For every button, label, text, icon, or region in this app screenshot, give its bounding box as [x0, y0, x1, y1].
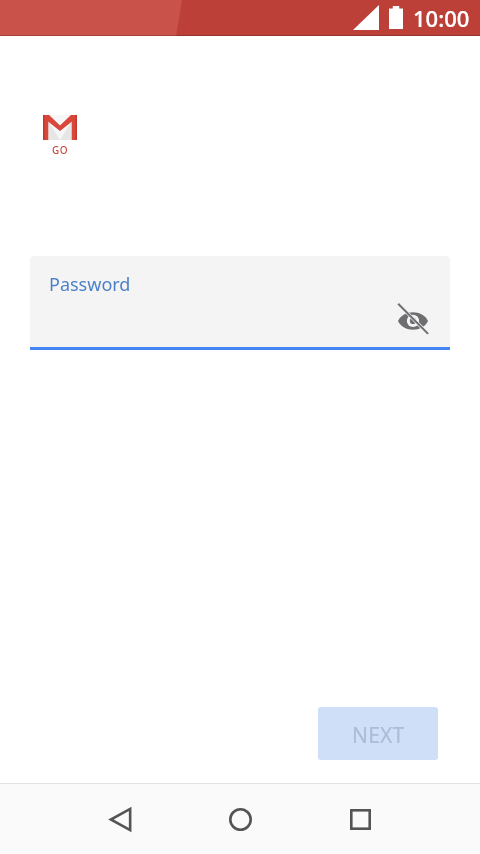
button[interactable]: Home — [216, 795, 264, 843]
button[interactable]: Show password — [389, 295, 437, 343]
staticText: NEXT — [352, 721, 405, 750]
staticText: Password — [49, 272, 131, 297]
staticText: 10:00 — [413, 3, 470, 33]
button[interactable]: Recent apps — [336, 795, 384, 843]
button[interactable]: Password — [30, 256, 450, 347]
staticText: GO — [52, 143, 68, 155]
button[interactable]: Back — [96, 795, 144, 843]
button[interactable]: NEXT — [318, 707, 438, 760]
